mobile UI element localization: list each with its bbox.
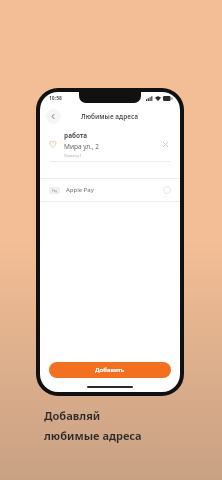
staticText: Pay — [52, 189, 58, 193]
staticText: Добавляй — [44, 408, 101, 423]
staticText: Добавить — [95, 366, 125, 374]
staticText: Мира ул., 2 — [64, 142, 99, 151]
button[interactable]: Назад — [46, 109, 61, 124]
staticText: 10:58 — [49, 95, 62, 102]
staticText: любимые адреса — [44, 428, 142, 443]
staticText: Apple Pay — [66, 186, 94, 194]
button[interactable]: Добавить — [49, 362, 171, 378]
staticText: работа — [64, 131, 88, 140]
button[interactable]: Удалить — [159, 138, 171, 150]
button[interactable]: работа — [40, 127, 180, 161]
button[interactable]: Pay — [40, 179, 180, 201]
staticText: Подъезд 1 — [64, 153, 82, 158]
staticText: Любимые адреса — [81, 112, 139, 121]
